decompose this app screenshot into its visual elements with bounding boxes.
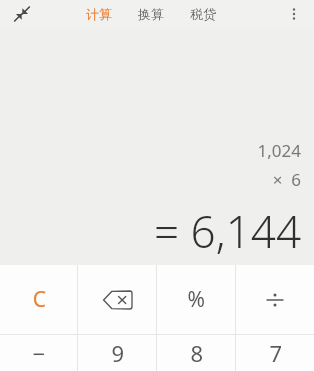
button[interactable]: 计算 <box>84 3 114 25</box>
staticText: 计算 <box>86 6 112 22</box>
button[interactable]: 换算 <box>136 3 166 25</box>
staticText: 7 <box>269 338 282 368</box>
staticText: 换算 <box>138 6 164 22</box>
staticText: = 6,144 <box>154 201 301 261</box>
staticText: C <box>32 285 46 314</box>
button[interactable]: Seven <box>236 335 314 371</box>
staticText: − <box>32 338 45 368</box>
button[interactable]: Clear <box>0 265 77 334</box>
button[interactable]: Backspace <box>78 265 156 334</box>
button[interactable]: 税贷 <box>188 3 218 25</box>
staticText: 1,024 <box>257 139 301 162</box>
button[interactable]: Collapse <box>11 3 33 25</box>
button[interactable]: More options <box>283 3 305 25</box>
staticText: 8 <box>190 338 203 368</box>
staticText: 税贷 <box>190 6 216 22</box>
button[interactable]: Percent <box>157 265 235 334</box>
button[interactable]: Minus <box>0 335 77 371</box>
button[interactable]: Eight <box>157 335 235 371</box>
button[interactable]: Nine <box>78 335 156 371</box>
staticText: % <box>187 285 205 314</box>
staticText: × 6 <box>272 168 301 191</box>
staticText: 9 <box>111 338 124 368</box>
button[interactable]: Divide <box>236 265 314 334</box>
